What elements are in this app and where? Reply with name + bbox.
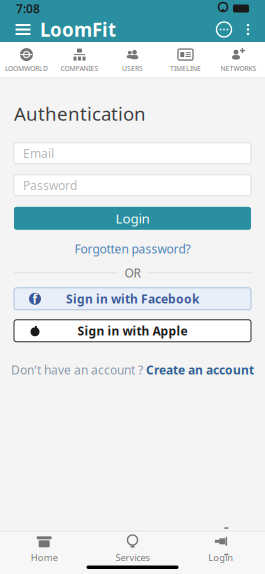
- staticText: LOOMWORLD: [5, 64, 48, 73]
- staticText: f: [32, 291, 37, 307]
- button[interactable]: Login: [177, 531, 265, 565]
- staticText: Create an account: [146, 362, 254, 378]
- button[interactable]: Forgotten password?: [0, 239, 265, 259]
- staticText: Services: [115, 551, 149, 564]
- button[interactable]: USERS: [106, 42, 159, 78]
- staticText: Home: [31, 551, 58, 564]
- button[interactable]: COMPANIES: [53, 42, 106, 78]
- button[interactable]: Messages: [211, 16, 237, 42]
- button[interactable]: TIMELINE: [159, 42, 212, 78]
- staticText: NETWORKS: [220, 64, 256, 73]
- staticText: USERS: [122, 64, 143, 73]
- staticText: Sign in with Apple: [77, 323, 187, 339]
- button[interactable]: Menu: [6, 16, 40, 42]
- button[interactable]: Services: [88, 531, 177, 565]
- staticText: Password: [23, 177, 77, 193]
- staticText: LoomFit: [40, 17, 116, 42]
- staticText: Authentication: [14, 101, 146, 126]
- button[interactable]: NETWORKS: [212, 42, 265, 78]
- staticText: Forgotten password?: [74, 241, 190, 257]
- staticText: OR: [124, 265, 140, 281]
- button[interactable]: Don't have an account ?: [0, 359, 265, 381]
- button[interactable]: More options: [237, 16, 259, 42]
- staticText: TIMELINE: [170, 64, 201, 73]
- staticText: COMPANIES: [60, 64, 98, 73]
- staticText: Don't have an account ?: [11, 362, 143, 378]
- button[interactable]: Sign in with Apple: [14, 320, 251, 342]
- staticText: Login: [115, 209, 149, 227]
- staticText: Email: [23, 145, 54, 161]
- staticText: 7:08: [16, 0, 40, 16]
- staticText: Sign in with Facebook: [66, 291, 199, 307]
- button[interactable]: LOOMWORLD: [0, 42, 53, 78]
- button[interactable]: Login: [14, 207, 251, 230]
- button[interactable]: Home: [0, 531, 88, 565]
- staticText: Login: [208, 551, 233, 564]
- button[interactable]: f: [14, 288, 251, 310]
